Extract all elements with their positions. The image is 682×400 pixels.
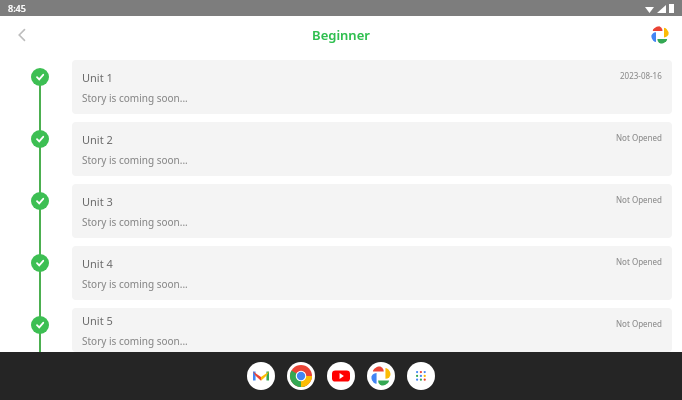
button[interactable]: Completed [31,192,49,210]
button[interactable]: Unit 1 [72,60,672,114]
staticText: Not Opened [616,132,662,143]
button[interactable]: Completed [31,316,49,334]
staticText: Story is coming soon... [82,334,188,348]
button[interactable]: YouTube [327,362,355,390]
staticText: 8:45 [8,2,26,14]
staticText: Story is coming soon... [82,215,188,229]
button[interactable]: Unit 4 [72,246,672,300]
staticText: Not Opened [616,194,662,205]
button[interactable]: Chrome [287,362,315,390]
button[interactable]: Completed [31,130,49,148]
staticText: Story is coming soon... [82,153,188,167]
staticText: Unit 4 [82,256,113,271]
staticText: 2023-08-16 [620,70,662,81]
staticText: Story is coming soon... [82,91,188,105]
button[interactable]: Unit 5 [72,308,672,352]
staticText: Not Opened [616,256,662,267]
staticText: Beginner [312,26,370,44]
staticText: Story is coming soon... [82,277,188,291]
button[interactable]: All apps [407,362,435,390]
button[interactable]: Unit 3 [72,184,672,238]
button[interactable]: Gmail [247,362,275,390]
button[interactable]: Completed [31,254,49,272]
staticText: Unit 2 [82,132,113,147]
staticText: Not Opened [616,318,662,329]
button[interactable]: Photos [367,362,395,390]
button[interactable]: Profile [646,21,674,49]
staticText: Unit 3 [82,194,113,209]
button[interactable]: Completed [31,68,49,86]
button[interactable]: Unit 2 [72,122,672,176]
button[interactable]: Back [6,19,38,51]
staticText: Unit 1 [82,70,113,85]
staticText: Unit 5 [82,313,113,328]
